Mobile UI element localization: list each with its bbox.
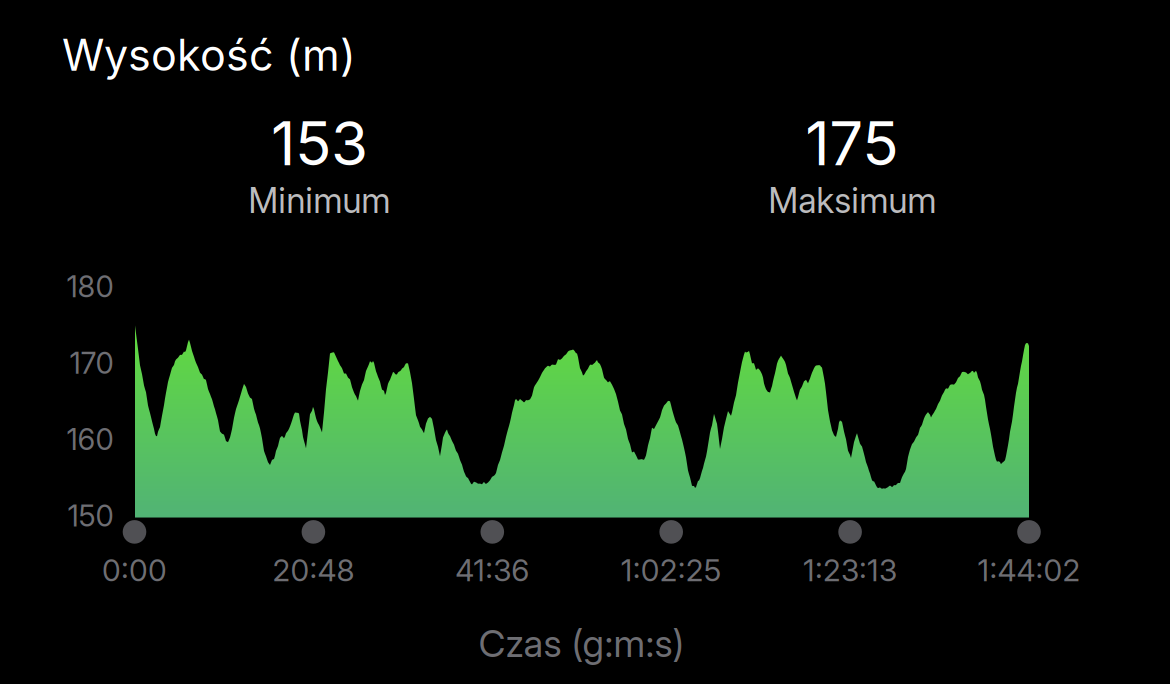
- staticText: 180: [67, 269, 114, 304]
- staticText: 170: [70, 345, 114, 381]
- staticText: Maksimum: [768, 180, 936, 221]
- staticText: 153: [271, 107, 368, 180]
- staticText: 150: [68, 498, 114, 534]
- staticText: 1:02:25: [621, 552, 722, 588]
- staticText: 1:23:13: [803, 552, 897, 588]
- staticText: Minimum: [248, 180, 390, 221]
- staticText: 160: [67, 422, 114, 457]
- staticText: 41:36: [455, 552, 529, 588]
- staticText: Czas (g:m:s): [478, 621, 684, 666]
- staticText: 20:48: [272, 552, 354, 588]
- staticText: Wysokość (m): [62, 29, 356, 81]
- staticText: 1:44:02: [977, 552, 1080, 588]
- staticText: 0:00: [102, 552, 167, 588]
- staticText: 175: [805, 107, 898, 180]
